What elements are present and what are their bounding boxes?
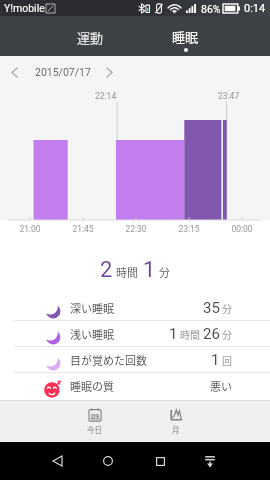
staticText: 00:00 <box>226 224 258 234</box>
staticText: 目が覚めた回数 <box>70 352 147 368</box>
staticText: 今日 <box>87 424 102 435</box>
button[interactable]: 深い睡眠 <box>0 295 270 320</box>
button[interactable]: Hide keyboard <box>198 449 222 473</box>
staticText: 月 <box>172 424 180 435</box>
button[interactable]: Next day <box>100 63 118 81</box>
staticText: 09 <box>91 412 100 420</box>
staticText: 1 <box>211 351 220 369</box>
button[interactable]: 運動 <box>60 16 120 56</box>
staticText: 深い睡眠 <box>70 300 114 316</box>
staticText: 時間 <box>116 264 138 280</box>
button[interactable]: 睡眠 <box>155 16 215 56</box>
staticText: 睡眠の質 <box>70 378 114 394</box>
staticText: 23:15 <box>173 224 205 234</box>
button[interactable]: 睡眠の質 <box>0 373 270 398</box>
staticText: 22:14 <box>95 91 117 101</box>
button[interactable]: 09 <box>64 400 124 442</box>
staticText: 分 <box>159 264 170 280</box>
staticText: 運動 <box>77 28 104 47</box>
staticText: 2015/07/17 <box>35 66 91 78</box>
staticText: 分 <box>222 301 232 315</box>
button[interactable]: 目が覚めた回数 <box>0 347 270 372</box>
staticText: 2 <box>100 257 113 283</box>
staticText: 1 <box>169 325 178 343</box>
button[interactable]: Back <box>45 449 69 473</box>
staticText: 35 <box>203 299 220 317</box>
staticText: 86% <box>201 3 221 15</box>
button[interactable]: Previous day <box>5 63 23 81</box>
button[interactable]: Home <box>96 449 120 473</box>
button[interactable]: 浅い睡眠 <box>0 321 270 346</box>
staticText: 22:30 <box>120 224 152 234</box>
staticText: 26 <box>203 325 220 343</box>
staticText: 21:00 <box>14 224 46 234</box>
staticText: Y!mobile <box>4 2 45 14</box>
staticText: 分 <box>222 327 232 341</box>
staticText: 23:47 <box>218 91 240 101</box>
staticText: 睡眠 <box>172 27 199 46</box>
staticText: 21:45 <box>67 224 99 234</box>
button[interactable]: 月 <box>146 400 206 442</box>
staticText: 0:14 <box>244 2 266 15</box>
staticText: 浅い睡眠 <box>70 326 114 342</box>
staticText: 回 <box>222 353 232 367</box>
staticText: 悪い <box>210 378 232 394</box>
staticText: 1 <box>143 257 156 283</box>
staticText: 時間 <box>180 327 200 341</box>
button[interactable]: Recent apps <box>148 449 172 473</box>
